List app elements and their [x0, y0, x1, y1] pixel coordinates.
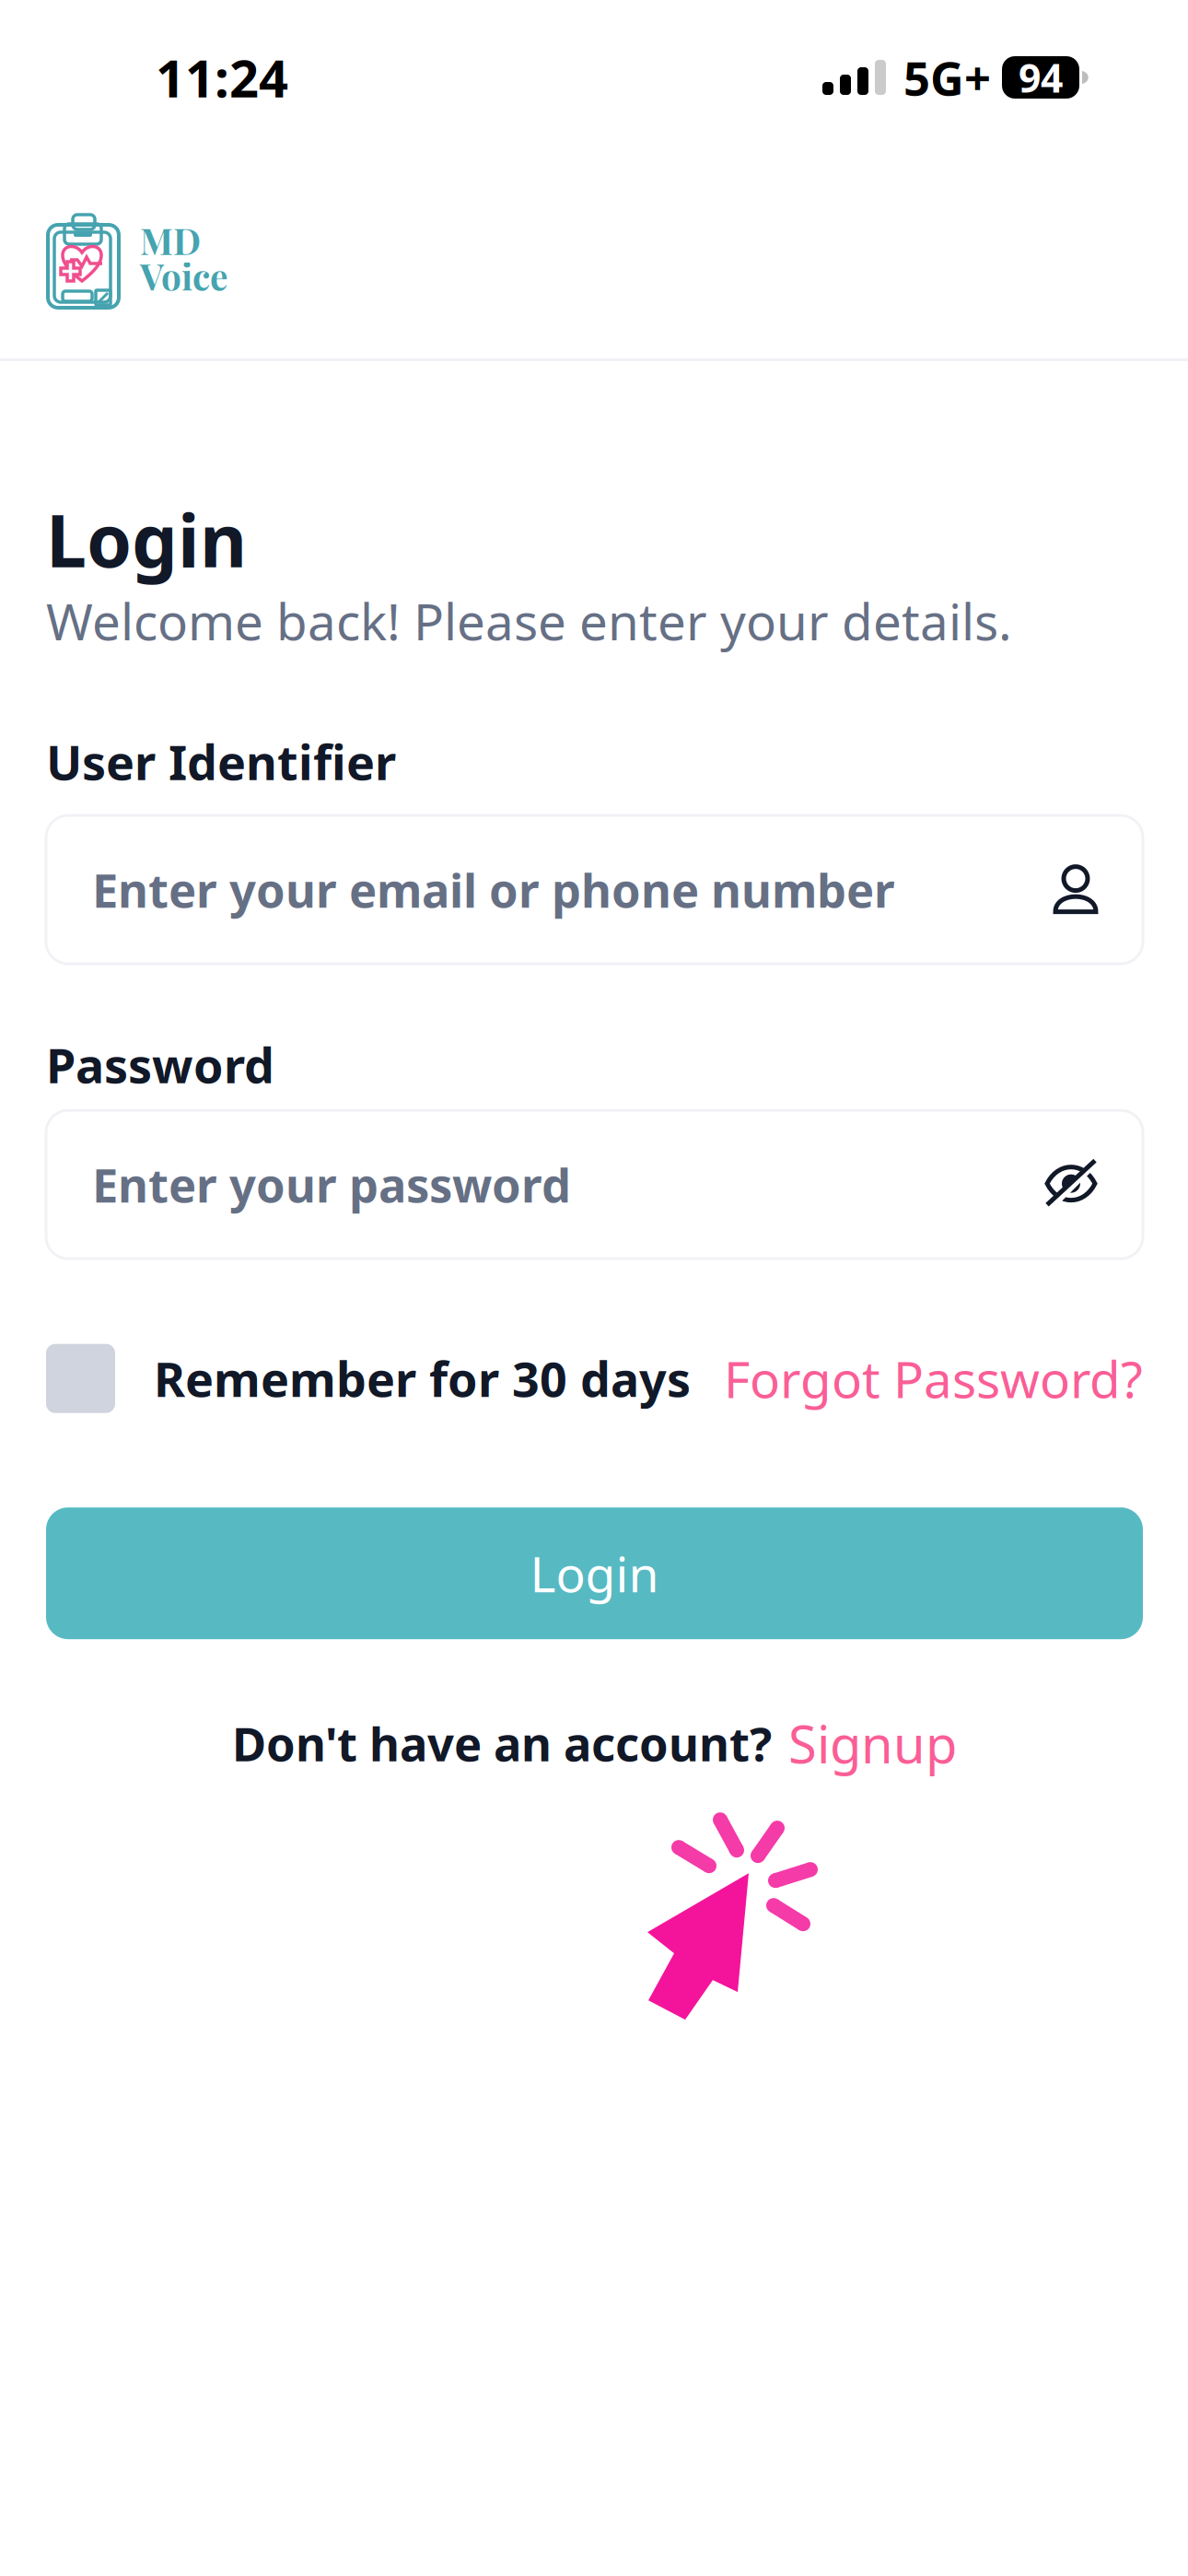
- staticText: Don't have an account?: [232, 1712, 772, 1774]
- staticText: Welcome back! Please enter your details.: [46, 587, 1012, 654]
- staticText: Login: [530, 1541, 659, 1606]
- button[interactable]: Signup: [772, 1709, 957, 1778]
- staticText: Enter your email or phone number: [92, 859, 895, 921]
- staticText: 94: [1019, 51, 1063, 104]
- button[interactable]: Remember for 30 days: [46, 1344, 115, 1413]
- staticText: Voice: [140, 252, 227, 299]
- button[interactable]: Forgot Password?: [724, 1345, 1143, 1412]
- staticText: User Identifier: [46, 730, 396, 793]
- staticText: MD: [140, 217, 201, 264]
- staticText: Signup: [788, 1709, 957, 1778]
- button[interactable]: Enter your password: [46, 1110, 1143, 1259]
- staticText: 5G+: [903, 46, 991, 108]
- staticText: Forgot Password?: [724, 1345, 1143, 1412]
- staticText: 11:24: [156, 43, 288, 112]
- staticText: Login: [46, 491, 247, 587]
- staticText: Password: [46, 1033, 274, 1097]
- button[interactable]: Login: [46, 1507, 1143, 1639]
- staticText: Enter your password: [92, 1153, 571, 1215]
- staticText: Remember for 30 days: [154, 1347, 691, 1410]
- button[interactable]: Enter your email or phone number: [46, 815, 1143, 964]
